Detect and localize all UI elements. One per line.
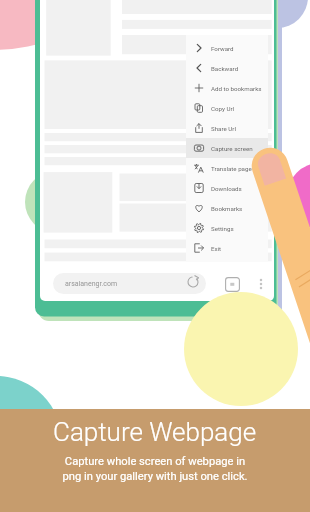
button[interactable]: Tabs [225, 277, 240, 292]
staticText: Bookmarks [211, 205, 243, 212]
button[interactable]: Share Url [186, 118, 268, 138]
button[interactable]: Reload [186, 275, 200, 289]
staticText: Capture whole screen of webpage in png i… [62, 455, 248, 482]
staticText: arsalanengr.com [65, 280, 118, 288]
button[interactable]: Backward [186, 58, 268, 78]
button[interactable]: Forward [186, 38, 268, 58]
staticText: Capture Webpage [53, 417, 257, 447]
button[interactable]: Capture screen [186, 138, 268, 158]
staticText: Forward [211, 45, 234, 52]
button[interactable]: Translate page [186, 158, 268, 178]
button[interactable]: More options [255, 278, 267, 290]
staticText: Copy Url [211, 105, 235, 112]
staticText: Translate page [211, 165, 252, 172]
button[interactable]: Add to bookmarks [186, 78, 268, 98]
button: Forward [186, 35, 268, 262]
staticText: Downloads [211, 185, 242, 192]
staticText: Settings [211, 225, 234, 232]
staticText: Backward [211, 65, 239, 72]
staticText: Exit [211, 245, 222, 252]
button[interactable]: Bookmarks [186, 198, 268, 218]
button[interactable]: arsalanengr.com [53, 273, 206, 294]
button[interactable]: Exit [186, 238, 268, 258]
staticText: Capture screen [211, 145, 253, 152]
button[interactable]: Settings [186, 218, 268, 238]
staticText: Share Url [211, 125, 236, 132]
staticText: Add to bookmarks [211, 85, 262, 92]
button[interactable]: Copy Url [186, 98, 268, 118]
button[interactable]: Downloads [186, 178, 268, 198]
